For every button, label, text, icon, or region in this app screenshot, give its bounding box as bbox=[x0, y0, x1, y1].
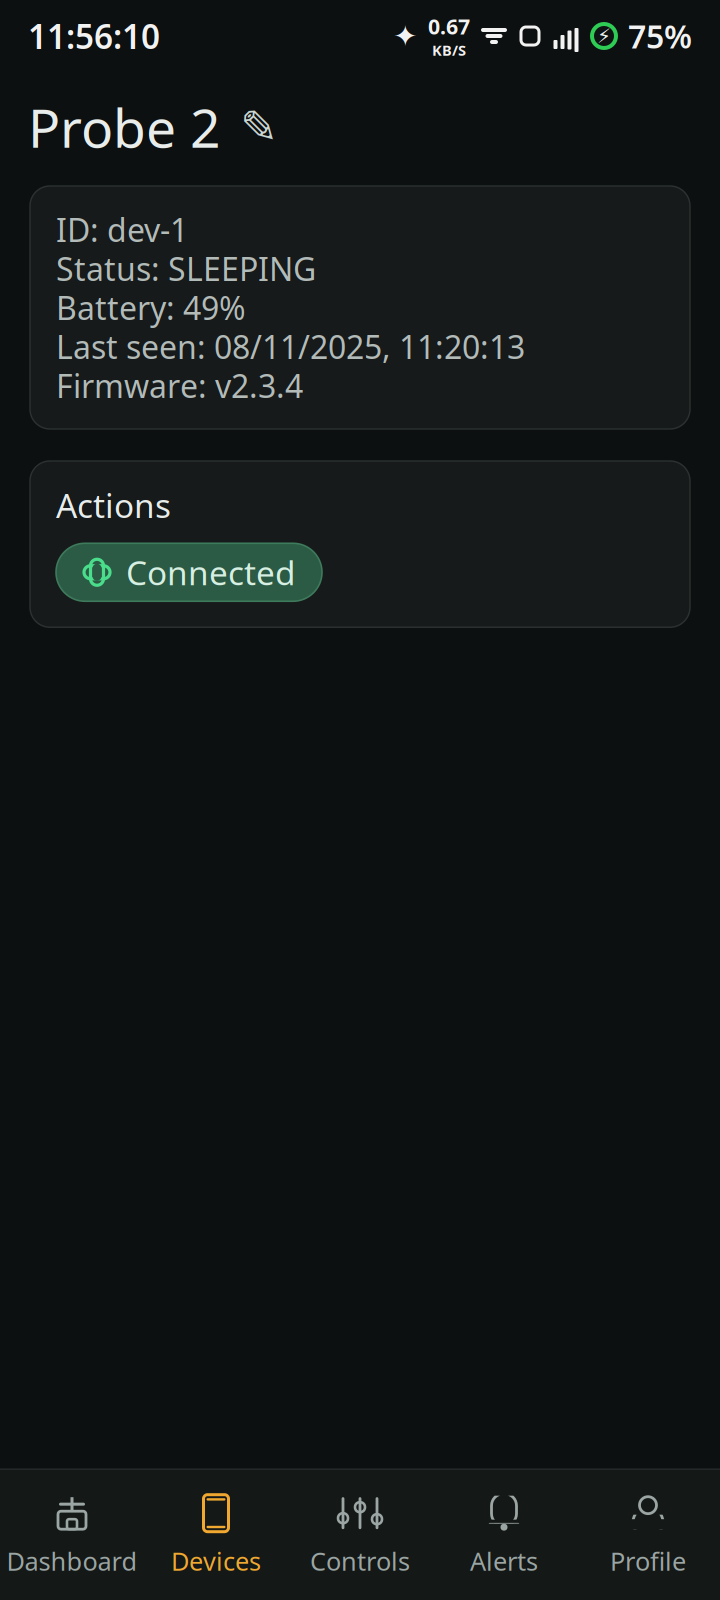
staticText: Status: SLEEPING bbox=[56, 247, 316, 290]
staticText: Devices bbox=[171, 1544, 261, 1578]
button[interactable]: Dashboard bbox=[0, 1470, 144, 1600]
button[interactable]: Profile bbox=[576, 1470, 720, 1600]
staticText: Controls bbox=[310, 1544, 410, 1578]
staticText: ID: dev-1 bbox=[56, 208, 188, 251]
staticText: Connected bbox=[126, 550, 296, 594]
button[interactable]: Controls bbox=[288, 1470, 432, 1600]
staticText: Alerts bbox=[470, 1544, 538, 1578]
staticText: 0.67 bbox=[428, 12, 470, 40]
staticText: Firmware: v2.3.4 bbox=[56, 364, 303, 407]
staticText: Profile bbox=[610, 1544, 686, 1578]
staticText: 11:56:10 bbox=[28, 14, 160, 58]
button[interactable]: Rename device bbox=[237, 105, 281, 149]
staticText: Dashboard bbox=[6, 1544, 137, 1578]
staticText: Last seen: 08/11/2025, 11:20:13 bbox=[56, 325, 525, 368]
staticText: Actions bbox=[56, 483, 171, 527]
button[interactable]: Devices bbox=[144, 1470, 288, 1600]
staticText: Battery: 49% bbox=[56, 286, 246, 329]
staticText: ✦ bbox=[393, 19, 418, 53]
staticText: ✎ bbox=[240, 101, 278, 153]
button[interactable]: Connected bbox=[56, 543, 322, 601]
staticText: ⚡︎ bbox=[597, 25, 611, 47]
staticText: KB/S bbox=[432, 40, 466, 60]
staticText: 75% bbox=[628, 15, 692, 57]
button[interactable]: Alerts bbox=[432, 1470, 576, 1600]
staticText: Probe 2 bbox=[28, 92, 221, 162]
